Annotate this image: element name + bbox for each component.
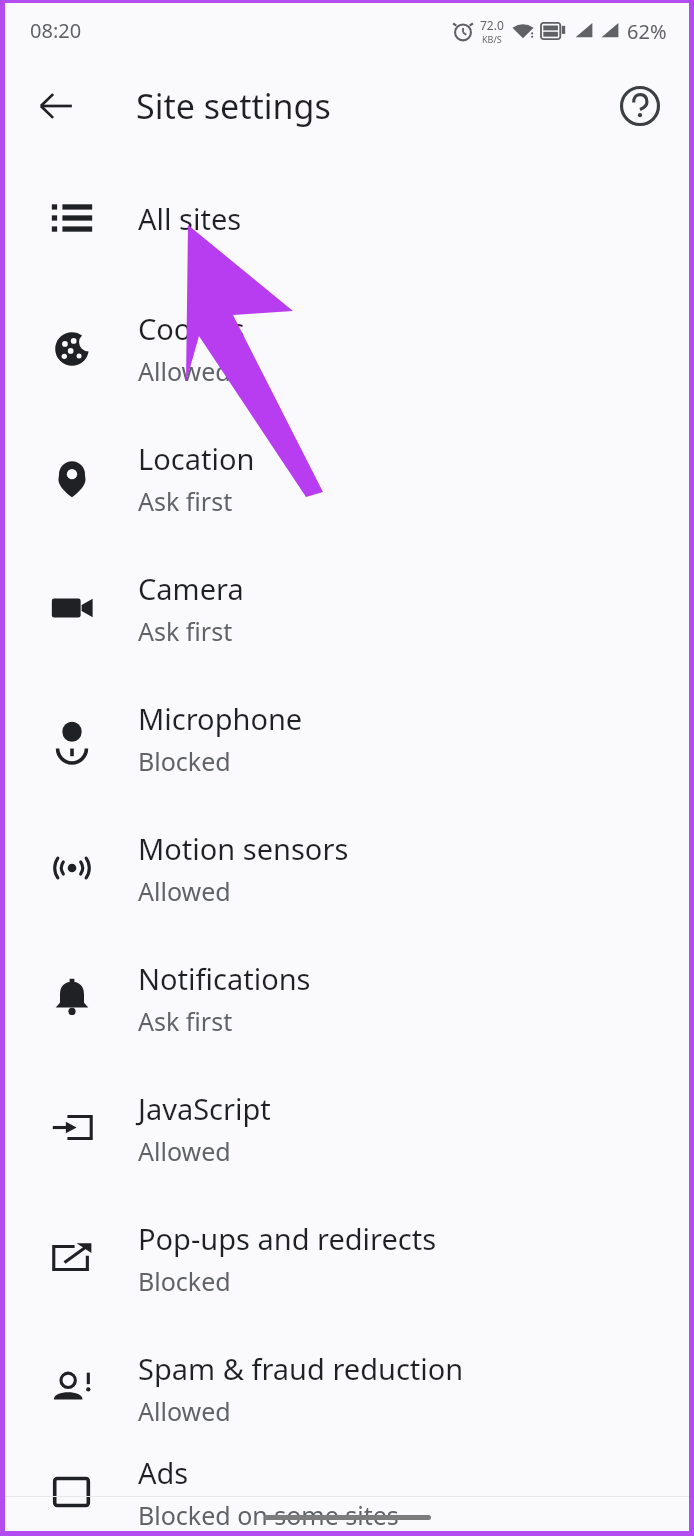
button[interactable]: Location [5,413,689,543]
staticText: 08:20 [30,17,82,44]
button[interactable]: Spam & fraud reduction [5,1323,689,1453]
staticText: Allowed [138,354,231,388]
staticText: Blocked [138,744,231,778]
staticText: JavaScript [138,1089,271,1128]
button[interactable]: Back [25,75,87,137]
button[interactable]: Ads [5,1453,689,1531]
staticText: Allowed [138,1134,231,1168]
staticText: 62% [627,18,667,45]
staticText: Microphone [138,699,303,738]
staticText: Camera [138,569,244,608]
staticText: Blocked on some sites [138,1498,399,1531]
staticText: Allowed [138,1394,231,1428]
staticText: Motion sensors [138,829,349,868]
staticText: Allowed [138,874,231,908]
staticText: Spam & fraud reduction [138,1349,464,1388]
button[interactable]: All sites [5,153,689,283]
staticText: Pop-ups and redirects [138,1219,437,1258]
button[interactable]: Camera [5,543,689,673]
staticText: Site settings [136,83,331,129]
staticText: Location [138,439,255,478]
staticText: Ask first [138,484,233,518]
staticText: Blocked [138,1264,231,1298]
staticText: Ads [138,1453,189,1492]
staticText: Notifications [138,959,311,998]
button[interactable]: Pop-ups and redirects [5,1193,689,1323]
button[interactable]: Microphone [5,673,689,803]
staticText: Ask first [138,1004,233,1038]
staticText: 72.0 [480,17,504,33]
staticText: KB/S [482,33,502,45]
staticText: Cookies [138,309,245,348]
button[interactable]: Cookies [5,283,689,413]
staticText: Ask first [138,614,233,648]
button[interactable]: Help [611,77,669,135]
button[interactable]: JavaScript [5,1063,689,1193]
button[interactable]: Motion sensors [5,803,689,933]
button[interactable]: Notifications [5,933,689,1063]
staticText: All sites [138,199,242,238]
